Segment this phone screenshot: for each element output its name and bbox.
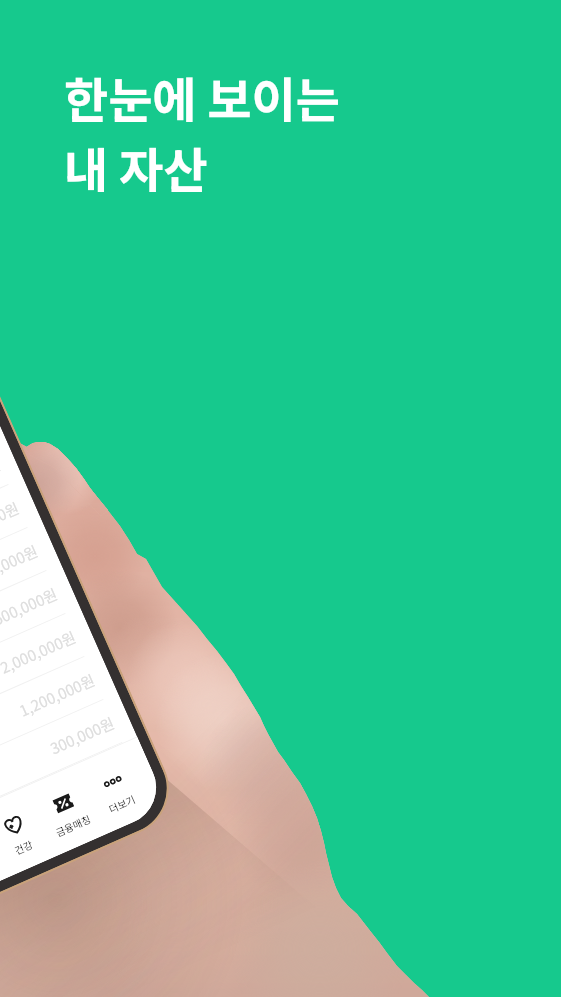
button[interactable]: 1,000,000원: [0, 521, 61, 685]
staticText: 50,000원: [0, 497, 23, 541]
button[interactable]: 300,000원: [0, 693, 137, 857]
staticText: 내 자산: [64, 132, 208, 202]
staticText: 건강: [12, 836, 35, 857]
button[interactable]: 300,000원: [0, 435, 23, 599]
button[interactable]: 더보기: [75, 742, 149, 821]
staticText: 300,000원: [46, 712, 118, 759]
staticText: 1,000,000원: [0, 540, 42, 592]
button[interactable]: 50,000원: [0, 478, 42, 642]
staticText: 금융매칭: [53, 811, 93, 839]
button[interactable]: 2,000,000원: [0, 607, 99, 771]
staticText: 500,000원: [0, 583, 61, 630]
button[interactable]: 500,000원: [0, 564, 80, 728]
button[interactable]: 1,200,000원: [0, 392, 4, 556]
staticText: 한눈에 보이는: [64, 62, 340, 132]
button[interactable]: 건강: [0, 786, 51, 864]
button[interactable]: 1,200,000원: [0, 650, 118, 814]
staticText: 더보기: [106, 791, 137, 815]
staticText: 2,000,000원: [0, 626, 80, 679]
staticText: 1,200,000원: [16, 669, 99, 722]
button[interactable]: 금융매칭: [25, 764, 100, 842]
button[interactable]: 혜택: [0, 807, 1, 886]
